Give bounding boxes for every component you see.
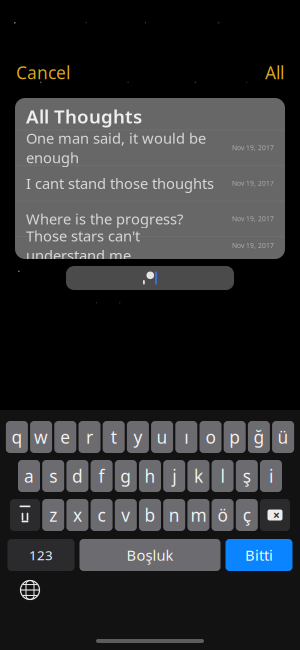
button[interactable]: y — [127, 421, 149, 453]
staticText: q — [11, 425, 22, 448]
staticText: z — [49, 503, 57, 526]
button[interactable]: i — [260, 460, 282, 492]
button[interactable]: k — [187, 460, 209, 492]
staticText: h — [144, 464, 155, 487]
button[interactable]: Boşluk — [79, 539, 220, 571]
button[interactable]: Shift — [10, 499, 40, 531]
staticText: v — [121, 503, 130, 526]
staticText: i — [269, 464, 273, 487]
button[interactable]: w — [30, 421, 52, 453]
button[interactable]: ü — [272, 421, 294, 453]
button[interactable]: f — [91, 460, 113, 492]
staticText: g — [120, 464, 131, 487]
button[interactable]: b — [139, 499, 161, 531]
button[interactable]: Search — [66, 266, 234, 290]
button[interactable]: m — [187, 499, 209, 531]
staticText: I cant stand those thoughts — [26, 173, 214, 193]
staticText: ü — [278, 425, 289, 448]
button[interactable]: q — [6, 421, 28, 453]
staticText: Nov 19, 2017 — [232, 241, 274, 250]
button[interactable]: c — [91, 499, 113, 531]
staticText: j — [172, 464, 176, 487]
staticText: c — [98, 503, 106, 526]
staticText: l — [221, 464, 225, 487]
button[interactable]: h — [139, 460, 161, 492]
button[interactable]: p — [224, 421, 246, 453]
button[interactable]: n — [163, 499, 185, 531]
staticText: Nov 19, 2017 — [232, 143, 274, 152]
button[interactable]: One man said, it would be enough — [15, 130, 285, 165]
staticText: r — [86, 425, 93, 448]
staticText: n — [169, 503, 180, 526]
button[interactable]: Delete — [260, 499, 290, 531]
staticText: ğ — [253, 425, 264, 448]
button[interactable]: Bitti — [225, 539, 292, 571]
button[interactable]: Where is the progress? — [15, 201, 285, 236]
button[interactable]: All — [265, 61, 284, 84]
button[interactable]: s — [42, 460, 64, 492]
staticText: s — [49, 464, 57, 487]
button[interactable]: g — [115, 460, 137, 492]
button[interactable]: ç — [236, 499, 258, 531]
button[interactable]: ğ — [248, 421, 270, 453]
button[interactable]: z — [42, 499, 64, 531]
staticText: Those stars can't understand me — [26, 226, 140, 265]
button[interactable]: v — [115, 499, 137, 531]
button[interactable]: a — [18, 460, 40, 492]
staticText: Nov 19, 2017 — [232, 179, 274, 188]
staticText: y — [133, 425, 142, 448]
button[interactable]: o — [199, 421, 221, 453]
button[interactable]: j — [163, 460, 185, 492]
staticText: x — [73, 503, 82, 526]
staticText: d — [72, 464, 83, 487]
staticText: All Thoughts — [26, 104, 142, 129]
button[interactable]: ı — [175, 421, 197, 453]
staticText: × — [273, 507, 280, 523]
staticText: Where is the progress? — [26, 209, 183, 228]
staticText: ö — [218, 503, 228, 526]
staticText: b — [144, 503, 155, 526]
button[interactable]: x — [66, 499, 88, 531]
staticText: One man said, it would be enough — [26, 128, 206, 167]
staticText: 123 — [29, 546, 53, 564]
button[interactable]: 123 — [7, 539, 74, 571]
button[interactable]: l — [212, 460, 234, 492]
staticText: p — [229, 425, 240, 448]
button[interactable]: r — [78, 421, 100, 453]
staticText: ç — [243, 503, 251, 526]
staticText: m — [190, 503, 206, 526]
staticText: Cancel — [16, 61, 70, 84]
staticText: a — [24, 464, 34, 487]
staticText: o — [205, 425, 215, 448]
staticText: ş — [243, 464, 251, 487]
staticText: ı — [184, 425, 188, 448]
button[interactable]: e — [54, 421, 76, 453]
staticText: t — [111, 425, 117, 448]
button[interactable]: Next keyboard — [17, 577, 43, 603]
staticText: Boşluk — [126, 545, 173, 565]
button[interactable]: t — [103, 421, 125, 453]
button[interactable]: Those stars can't understand me — [15, 236, 285, 254]
staticText: Nov 19, 2017 — [232, 214, 274, 223]
staticText: u — [157, 425, 168, 448]
staticText: All — [265, 61, 284, 84]
staticText: f — [99, 464, 105, 487]
button[interactable]: ö — [212, 499, 234, 531]
staticText: w — [34, 425, 48, 448]
button[interactable]: u — [151, 421, 173, 453]
button[interactable]: Cancel — [16, 61, 70, 84]
staticText: k — [194, 464, 203, 487]
button[interactable]: ş — [236, 460, 258, 492]
button[interactable]: d — [66, 460, 88, 492]
button[interactable]: I cant stand those thoughts — [15, 165, 285, 201]
staticText: Bitti — [245, 545, 273, 565]
staticText: e — [60, 425, 70, 448]
